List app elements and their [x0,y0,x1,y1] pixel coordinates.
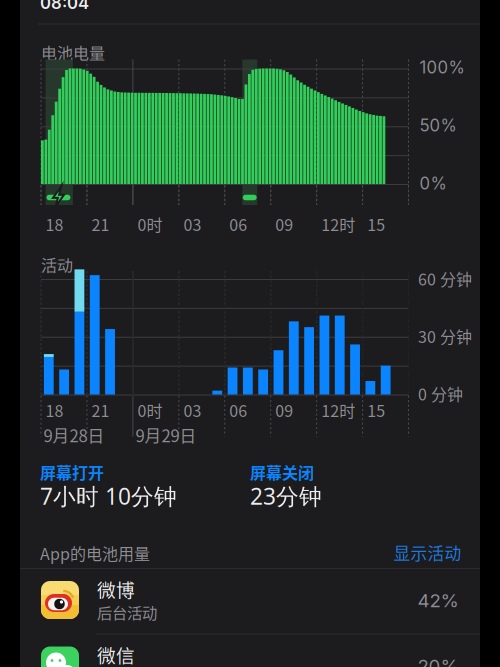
staticText: 12时 [321,212,355,236]
staticText: 18 [46,398,64,422]
staticText: 50% [419,115,456,136]
button[interactable]: 屏幕关闭 [250,462,450,518]
button[interactable]: 显示活动 [351,538,461,566]
staticText: 电池电量 [41,41,105,64]
staticText: 21 [91,398,109,422]
staticText: 活动 [41,253,73,276]
staticText: App的电池用量 [40,541,150,565]
staticText: 微信 [97,641,135,667]
staticText: 09 [275,398,293,422]
staticText: 06 [229,398,247,422]
staticText: 20% [417,655,458,667]
staticText: 15 [367,212,385,236]
button[interactable]: 微信 [20,633,480,667]
staticText: 03 [183,212,201,236]
staticText: 12时 [321,398,355,422]
staticText: 显示活动 [393,540,461,564]
staticText: 0时 [137,398,162,422]
staticText: 9月29日 [135,423,196,447]
staticText: 屏幕打开 [40,460,104,484]
staticText: 屏幕关闭 [250,460,314,484]
staticText: 42% [417,589,458,612]
staticText: 100% [419,57,464,78]
staticText: 08:04 [40,0,89,13]
staticText: 21 [91,212,109,236]
staticText: 9月28日 [43,423,104,447]
staticText: 60 分钟 [418,267,472,290]
staticText: 后台活动 [97,601,157,623]
staticText: 0% [419,173,446,194]
staticText: 0 分钟 [418,382,463,405]
staticText: 03 [183,398,201,422]
button[interactable]: 微博 [20,568,480,633]
staticText: 0时 [137,212,162,236]
staticText: 09 [275,212,293,236]
staticText: 06 [229,212,247,236]
staticText: 23分钟 [250,481,322,511]
staticText: 18 [46,212,64,236]
staticText: 30 分钟 [418,324,472,348]
staticText: 7小时 10分钟 [40,481,177,511]
staticText: 微博 [97,575,135,602]
button[interactable]: 屏幕打开 [40,462,240,518]
staticText: 15 [367,398,385,422]
